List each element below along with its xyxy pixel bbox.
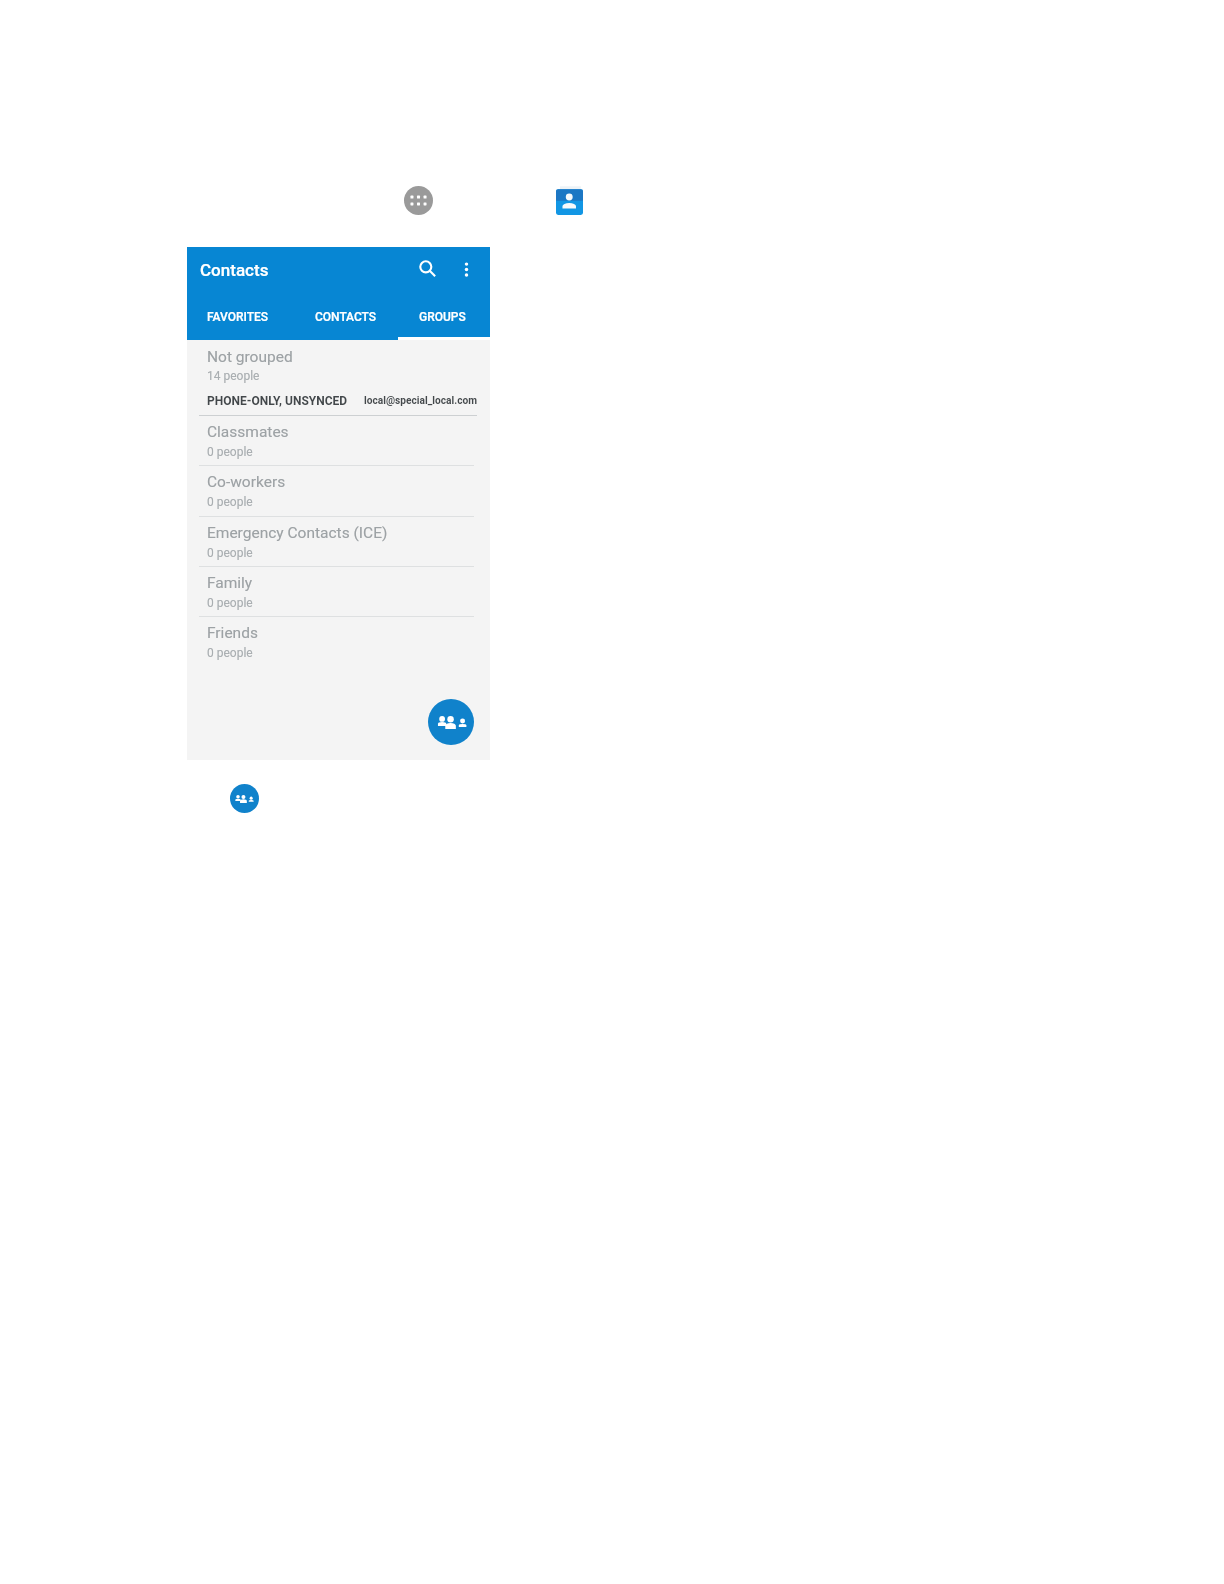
staticText: CONTACTS (315, 310, 377, 324)
button[interactable]: Not grouped (187, 340, 490, 416)
staticText: FAVORITES (207, 310, 269, 324)
staticText: Contacts (200, 260, 269, 280)
staticText: 0 people (207, 596, 253, 610)
staticText: GROUPS (419, 310, 466, 324)
button[interactable]: Family (187, 566, 490, 616)
staticText: Not grouped (207, 348, 293, 366)
staticText: 14 people (207, 369, 260, 383)
button[interactable]: Create group (230, 784, 259, 813)
button[interactable]: Co-workers (187, 465, 490, 515)
button[interactable]: CONTACTS (292, 299, 399, 339)
button[interactable]: Contacts app (556, 186, 583, 215)
staticText: Family (207, 574, 253, 592)
button[interactable]: More options (451, 254, 481, 284)
button[interactable]: FAVORITES (187, 299, 288, 339)
staticText: 0 people (207, 495, 253, 509)
button[interactable]: Create group (428, 699, 474, 745)
button[interactable]: Search (412, 253, 442, 283)
button[interactable]: GROUPS (395, 299, 490, 339)
staticText: local@special_local.com (364, 395, 478, 407)
staticText: 0 people (207, 546, 253, 560)
staticText: Friends (207, 624, 258, 642)
staticText: Co-workers (207, 473, 286, 491)
staticText: Emergency Contacts (ICE) (207, 524, 388, 542)
staticText: Classmates (207, 423, 289, 441)
staticText: PHONE-ONLY, UNSYNCED (207, 394, 348, 408)
staticText: 0 people (207, 646, 253, 660)
button[interactable]: Friends (187, 616, 490, 666)
button[interactable]: Classmates (187, 415, 490, 465)
button[interactable]: All apps (404, 186, 433, 215)
staticText: 0 people (207, 445, 253, 459)
button[interactable]: Emergency Contacts (ICE) (187, 516, 490, 566)
